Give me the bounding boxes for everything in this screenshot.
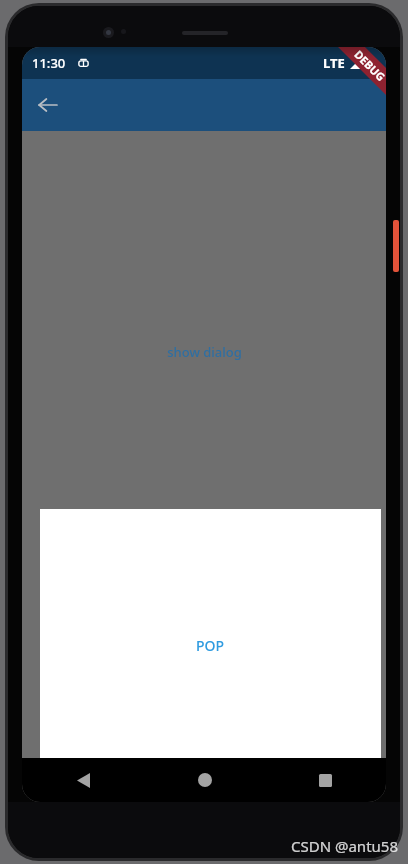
button[interactable]: Back <box>28 85 68 125</box>
button[interactable]: Home <box>144 758 265 802</box>
staticText: DEBUG <box>351 47 386 84</box>
button[interactable]: Back <box>22 758 144 802</box>
staticText: show dialog <box>167 343 242 361</box>
staticText: 11:30 <box>32 54 66 72</box>
staticText: LTE <box>323 54 345 72</box>
staticText: POP <box>196 636 225 655</box>
button[interactable]: Recent apps <box>265 758 386 802</box>
button[interactable]: show dialog <box>157 337 252 367</box>
staticText: CSDN @antu58 <box>291 836 398 856</box>
button[interactable]: POP <box>184 628 237 663</box>
